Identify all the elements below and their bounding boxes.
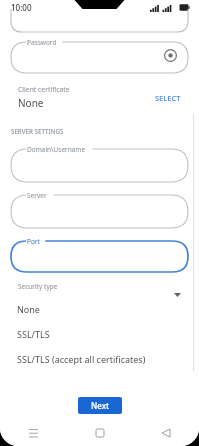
staticText: SSL/TLS (accept all certificates): [17, 353, 146, 365]
button[interactable]: Client certificate: [18, 85, 181, 110]
button[interactable]: Server: [11, 190, 188, 228]
button[interactable]: Domain\Username: [11, 144, 188, 182]
staticText: None: [17, 303, 40, 315]
staticText: Next: [91, 400, 110, 411]
staticText: None: [18, 96, 44, 110]
staticText: Port: [27, 237, 40, 246]
staticText: SSL/TLS: [17, 328, 50, 340]
staticText: Domain\Username: [27, 145, 86, 154]
button[interactable]: Recents: [22, 422, 44, 444]
button[interactable]: None: [9, 296, 164, 321]
button[interactable]: Password: [11, 37, 188, 73]
other: Expand security type: [174, 293, 181, 297]
staticText: Password: [27, 38, 57, 47]
button[interactable]: Port: [11, 236, 188, 272]
button[interactable]: Next: [78, 397, 122, 414]
button[interactable]: Back: [155, 422, 177, 444]
staticText: Security type: [18, 282, 58, 291]
staticText: Server: [27, 191, 47, 200]
button[interactable]: SSL/TLS: [9, 321, 164, 346]
staticText: SERVER SETTINGS: [11, 127, 64, 135]
staticText: Client certificate: [18, 85, 70, 94]
staticText: 10:00: [11, 2, 32, 13]
button[interactable]: SSL/TLS (accept all certificates): [9, 346, 164, 371]
button[interactable]: Show password: [162, 47, 178, 63]
button[interactable]: Home: [89, 422, 111, 444]
button[interactable]: Security type: [0, 282, 199, 304]
staticText: SELECT: [155, 93, 181, 103]
button[interactable]: Switch to modern authentication: [0, 426, 199, 436]
